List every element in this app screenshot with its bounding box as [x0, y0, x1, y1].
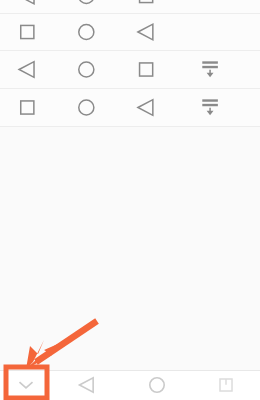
button[interactable]: Hide navigation bar — [0, 370, 52, 400]
button[interactable]: Back — [52, 370, 122, 400]
button[interactable] — [0, 0, 260, 14]
button[interactable]: Recents — [191, 370, 260, 400]
button[interactable]: Home — [122, 370, 191, 400]
button[interactable] — [0, 51, 260, 89]
button[interactable] — [0, 89, 260, 127]
button[interactable] — [0, 14, 260, 51]
